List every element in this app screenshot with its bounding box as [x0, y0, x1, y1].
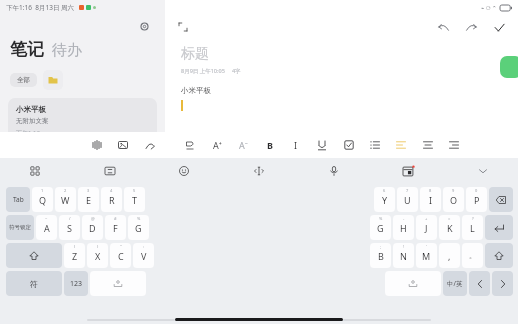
staticText: 123 [70, 279, 83, 289]
button[interactable]: 中/英 [443, 271, 467, 296]
staticText: 下午1:13 [16, 129, 40, 137]
staticText: 1 [41, 188, 44, 193]
button[interactable]: W [55, 187, 76, 212]
button[interactable]: Space [385, 271, 441, 296]
button[interactable]: Shift [6, 243, 62, 268]
button[interactable]: 符 [6, 271, 62, 296]
button[interactable]: Highlight [181, 136, 199, 154]
button[interactable]: Hide keyboard [474, 162, 492, 180]
button[interactable]: Tab [6, 187, 30, 212]
button[interactable]: Y [374, 187, 395, 212]
button[interactable]: N [393, 243, 414, 268]
button[interactable]: WeChat floating window [500, 56, 518, 78]
button[interactable]: Next [492, 271, 513, 296]
button[interactable]: E [78, 187, 99, 212]
button[interactable]: U [397, 187, 418, 212]
button[interactable]: Keyboard layouts [26, 162, 44, 180]
button[interactable]: 。 [462, 243, 483, 268]
button[interactable]: K [439, 215, 460, 240]
button[interactable]: A [36, 215, 57, 240]
staticText: 符 [30, 279, 38, 289]
button[interactable]: Z [64, 243, 85, 268]
button[interactable]: G [370, 215, 391, 240]
staticText: X [95, 250, 101, 262]
button[interactable]: Align right [445, 136, 463, 154]
button[interactable]: B [261, 136, 279, 154]
button[interactable]: 符号锁定 [6, 215, 34, 240]
staticText: M [422, 250, 431, 262]
button[interactable]: Underline [313, 136, 331, 154]
button[interactable]: 待办 [52, 41, 82, 60]
button[interactable]: H [393, 215, 414, 240]
button[interactable]: Previous [469, 271, 490, 296]
button[interactable]: 小米平板 [8, 98, 157, 144]
staticText: K [447, 222, 453, 234]
button[interactable]: Checklist [340, 136, 358, 154]
staticText: Q [39, 194, 47, 206]
button[interactable]: , [439, 243, 460, 268]
button[interactable]: Clipboard [399, 162, 417, 180]
button[interactable]: P [466, 187, 487, 212]
staticText: = [448, 216, 451, 221]
staticText: 8 [429, 188, 432, 193]
staticText: B [378, 250, 384, 262]
staticText: G [135, 222, 142, 234]
button[interactable]: F [105, 215, 126, 240]
staticText: ' [426, 244, 427, 249]
button[interactable]: Undo [434, 18, 452, 36]
button[interactable]: Voice input [325, 162, 343, 180]
staticText: O [450, 194, 458, 206]
button[interactable]: J [416, 215, 437, 240]
button[interactable]: Handwriting [101, 162, 119, 180]
button[interactable]: A⁻ [234, 136, 252, 154]
button[interactable]: Image [114, 136, 132, 154]
button[interactable]: Draw [141, 136, 159, 154]
button[interactable]: Expand [175, 19, 191, 35]
button[interactable]: O [443, 187, 464, 212]
button[interactable]: Space [90, 271, 146, 296]
button[interactable]: Cursor [250, 162, 268, 180]
staticText: W [61, 194, 70, 206]
button[interactable]: Enter [485, 215, 513, 240]
button[interactable]: Align left [392, 136, 410, 154]
staticText: 符号锁定 [9, 224, 31, 231]
button[interactable]: G [128, 215, 149, 240]
button[interactable]: Q [32, 187, 53, 212]
staticText: P [474, 194, 480, 206]
button[interactable]: I [420, 187, 441, 212]
button[interactable]: L [462, 215, 483, 240]
button[interactable]: X [87, 243, 108, 268]
staticText: 笔记 [10, 39, 44, 60]
button[interactable]: 123 [64, 271, 88, 296]
button[interactable]: C [110, 243, 131, 268]
button[interactable]: Shift [485, 243, 513, 268]
button[interactable]: Done [490, 18, 508, 36]
button[interactable]: B [370, 243, 391, 268]
button[interactable]: T [124, 187, 145, 212]
staticText: L [470, 222, 475, 234]
button[interactable]: Emoji [175, 162, 193, 180]
button[interactable]: I [287, 136, 305, 154]
staticText: 9 [452, 188, 455, 193]
button[interactable]: R [101, 187, 122, 212]
staticText: E [86, 194, 92, 206]
staticText: 8月9日 上午10:05 4字 [181, 67, 241, 75]
button[interactable]: S [59, 215, 80, 240]
button[interactable]: Redo [462, 18, 480, 36]
button[interactable]: Bullet list [366, 136, 384, 154]
button[interactable]: Align center [419, 136, 437, 154]
button[interactable]: Voice [88, 136, 106, 154]
button[interactable]: Backspace [489, 187, 513, 212]
button[interactable]: 全部 [17, 76, 30, 84]
staticText: A⁺ [213, 139, 222, 151]
button[interactable]: D [82, 215, 103, 240]
staticText: 小米平板 [16, 105, 46, 114]
button[interactable]: Settings [135, 17, 153, 35]
staticText: A⁻ [239, 139, 248, 151]
button[interactable]: 笔记 [10, 39, 44, 60]
button[interactable]: V [133, 243, 154, 268]
button[interactable]: Folders [43, 70, 63, 90]
button[interactable]: A⁺ [208, 136, 226, 154]
staticText: # [114, 216, 117, 221]
button[interactable]: M [416, 243, 437, 268]
